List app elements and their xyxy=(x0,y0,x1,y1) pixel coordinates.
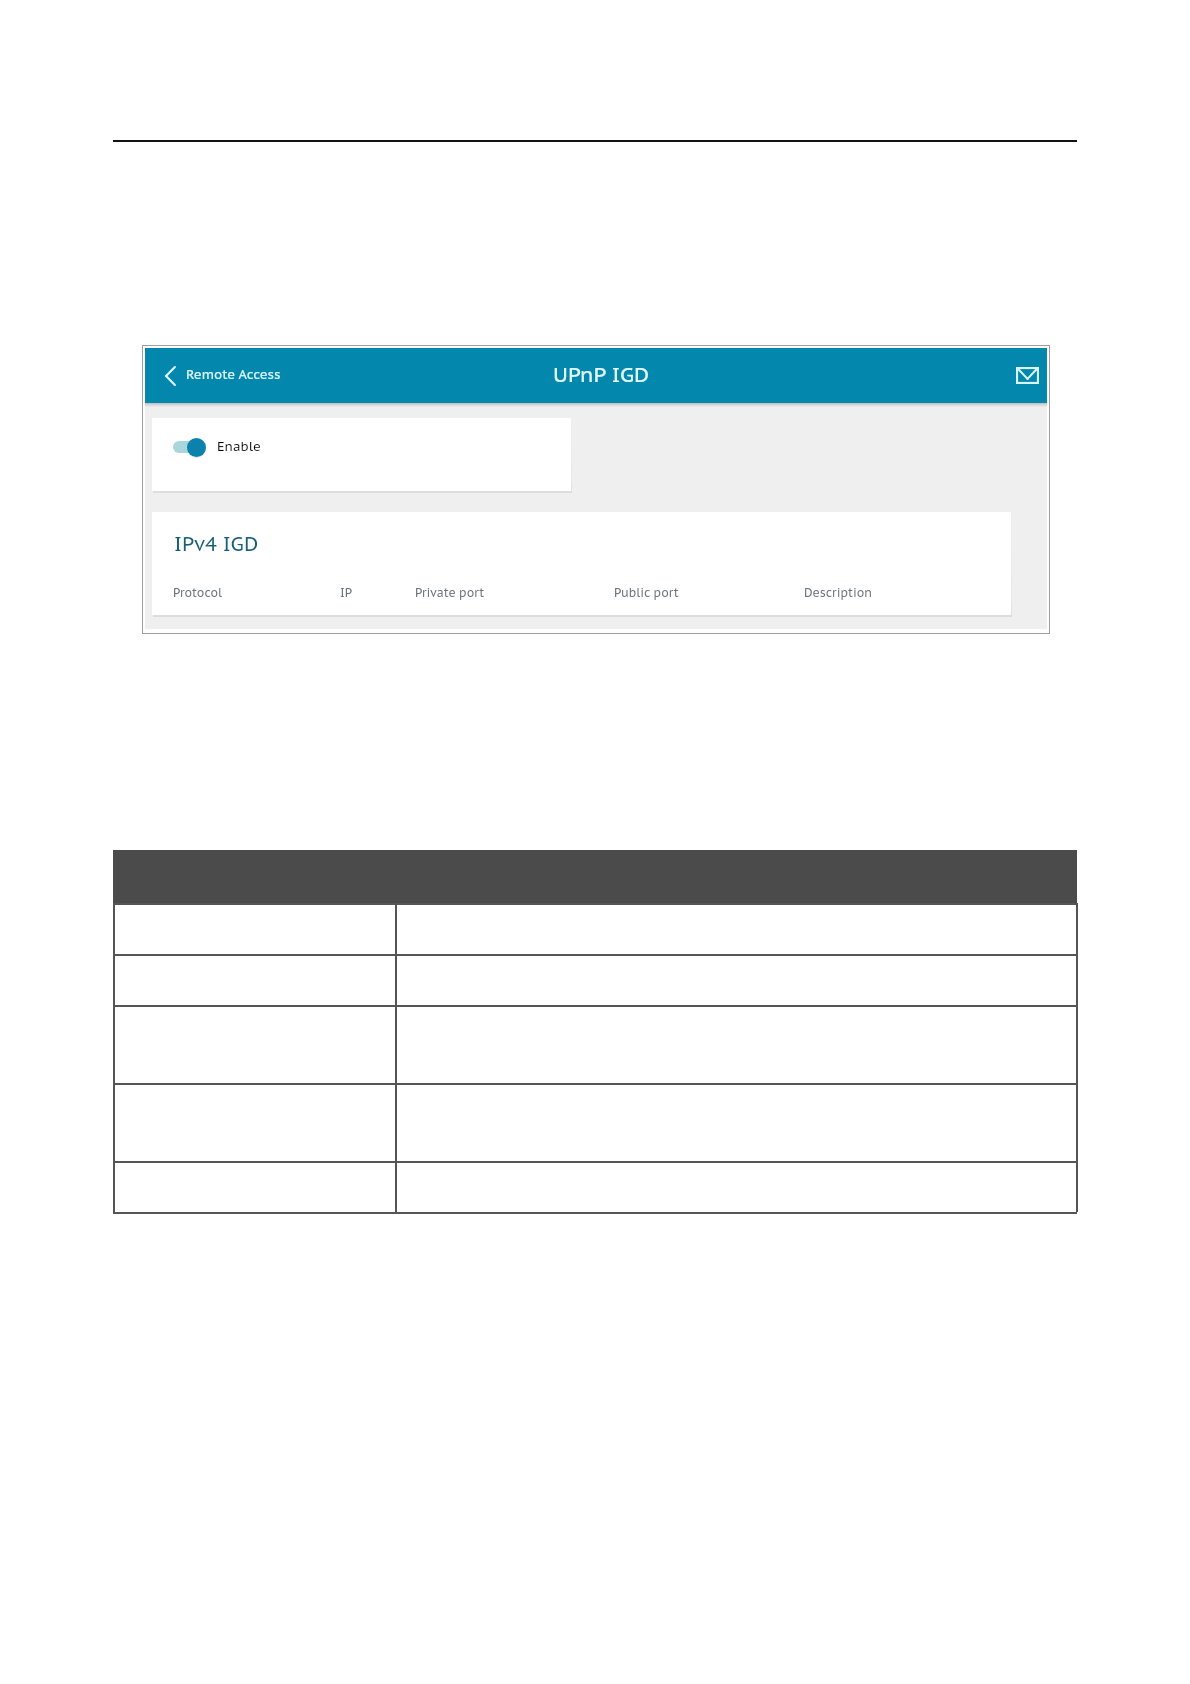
staticText: UPnP IGD xyxy=(553,361,650,388)
staticText: Description xyxy=(804,585,872,601)
staticText: Protocol xyxy=(173,585,223,601)
button[interactable]: Enable xyxy=(152,418,571,491)
button[interactable]: Messages xyxy=(1005,348,1049,403)
staticText: Private port xyxy=(415,585,485,601)
staticText: IP xyxy=(340,585,353,601)
staticText: IPv4 IGD xyxy=(174,531,259,557)
staticText: Enable xyxy=(217,438,261,455)
staticText: Public port xyxy=(614,585,679,601)
other: Back xyxy=(160,348,180,403)
staticText: Remote Access xyxy=(186,366,281,383)
button[interactable]: Back xyxy=(163,348,281,403)
